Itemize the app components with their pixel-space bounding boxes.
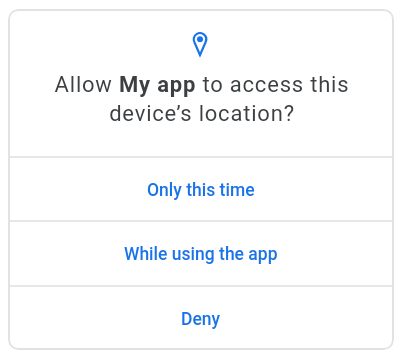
staticText: Deny: [181, 309, 221, 330]
staticText: Only this time: [147, 180, 255, 201]
button[interactable]: Only this time: [8, 159, 394, 222]
staticText: Allow My app to access this device’s loc…: [9, 72, 394, 126]
button[interactable]: While using the app: [8, 223, 394, 286]
staticText: While using the app: [124, 244, 278, 265]
button[interactable]: Deny: [8, 288, 394, 350]
